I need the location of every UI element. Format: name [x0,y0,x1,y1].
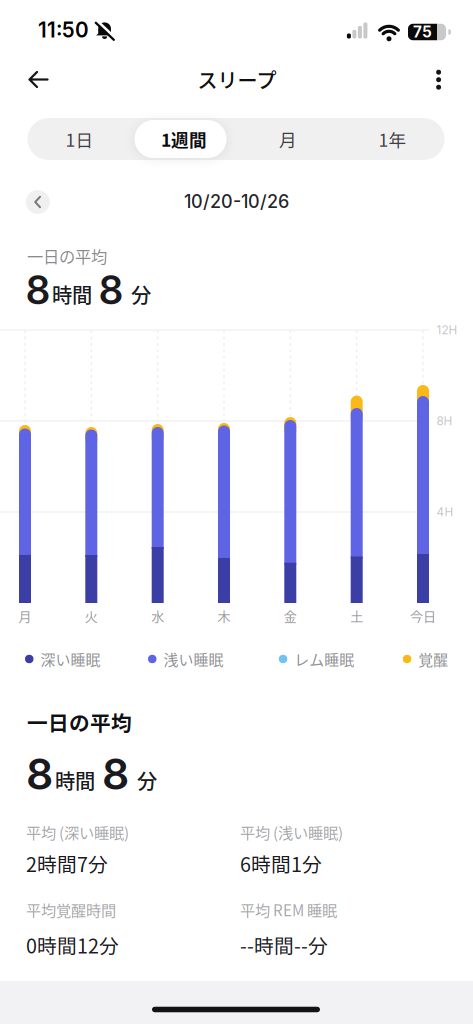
button[interactable]: 1週間 [132,118,236,160]
staticText: 2時間7分 [26,849,108,878]
staticText: 8 [99,266,123,314]
staticText: 平均 (深い睡眠) [26,821,129,843]
staticText: 水 [151,606,164,625]
staticText: 時間 [52,279,92,309]
button[interactable]: 1年 [340,118,444,160]
staticText: 一日の平均 [27,707,132,737]
staticText: 今日 [410,606,436,625]
staticText: 1年 [378,126,406,152]
staticText: 月 [18,606,31,625]
staticText: 土 [350,606,363,625]
staticText: 4H [436,505,453,519]
staticText: 時間 [55,765,95,795]
staticText: 11:50 [38,17,89,42]
button[interactable] [26,190,50,214]
staticText: 8 [26,748,53,800]
staticText: 75 [413,23,432,41]
staticText: --時間--分 [240,931,328,959]
staticText: 1日 [66,126,94,152]
staticText: 平均 (浅い睡眠) [240,821,343,843]
staticText: 平均 REM 睡眠 [240,898,337,920]
staticText: 0時間12分 [26,931,119,959]
staticText: 平均覚醒時間 [26,898,116,920]
button[interactable]: 月 [236,118,340,160]
staticText: 月 [279,126,297,152]
staticText: 火 [85,606,98,625]
staticText: 10/20-10/26 [184,191,289,212]
staticText: 6時間1分 [240,849,322,878]
staticText: 浅い睡眠 [163,648,223,670]
staticText: 一日の平均 [27,244,107,268]
staticText: 12H [436,323,457,337]
staticText: 1週間 [161,126,207,152]
staticText: スリープ [197,65,276,94]
staticText: 木 [217,606,230,625]
button[interactable] [16,57,60,101]
staticText: 深い睡眠 [40,648,100,670]
staticText: 覚醒 [418,648,448,670]
staticText: レム睡眠 [294,648,354,670]
staticText: 金 [284,606,297,625]
staticText: 8 [26,266,50,314]
staticText: 分 [131,279,151,309]
staticText: 8 [102,748,129,800]
staticText: 8H [436,414,452,428]
button[interactable] [417,58,461,102]
staticText: 分 [137,765,157,795]
button[interactable]: 1日 [28,118,132,160]
